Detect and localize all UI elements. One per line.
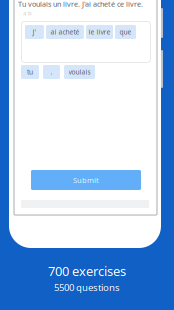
button[interactable]: Submit: [31, 170, 141, 190]
button[interactable]: le livre: [86, 25, 113, 39]
staticText: 5500 questions: [54, 281, 120, 294]
button[interactable]: ai acheté: [46, 25, 84, 39]
staticText: que: [119, 27, 131, 37]
button[interactable]: que: [115, 25, 136, 39]
staticText: .: [50, 67, 52, 77]
button[interactable]: J': [25, 25, 44, 39]
staticText: tu: [27, 67, 33, 77]
staticText: Tu voulais un livre. J'ai acheté ce livr…: [18, 0, 143, 9]
staticText: Submit: [73, 175, 99, 185]
staticText: 700 exercises: [48, 262, 126, 280]
staticText: ai acheté: [50, 27, 79, 37]
staticText: J': [32, 27, 36, 37]
button[interactable]: tu: [21, 65, 39, 79]
staticText: a b: [23, 9, 32, 17]
staticText: le livre: [88, 27, 110, 37]
button[interactable]: .: [43, 65, 60, 79]
button[interactable]: voulais: [64, 65, 95, 79]
staticText: voulais: [68, 67, 90, 77]
